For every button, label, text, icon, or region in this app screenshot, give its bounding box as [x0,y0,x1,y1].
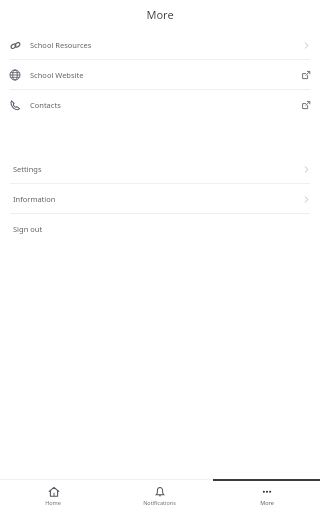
button[interactable]: School Website [0,60,320,89]
staticText: Sign out [13,224,43,234]
button[interactable]: Settings [0,154,320,183]
button[interactable]: Information [0,184,320,213]
button[interactable]: Sign out [0,214,320,243]
button[interactable]: School Resources [0,30,320,59]
staticText: More [260,499,274,506]
button[interactable]: Notifications [106,479,213,512]
staticText: Contacts [30,100,61,110]
staticText: More [146,7,174,22]
staticText: School Resources [30,40,92,50]
staticText: Home [45,499,61,506]
staticText: Information [13,194,56,204]
staticText: Settings [13,164,42,174]
button[interactable]: More [213,479,320,512]
staticText: Notifications [143,499,176,506]
staticText: School Website [30,70,84,80]
button[interactable]: Contacts [0,90,320,119]
button[interactable]: Home [0,479,106,512]
